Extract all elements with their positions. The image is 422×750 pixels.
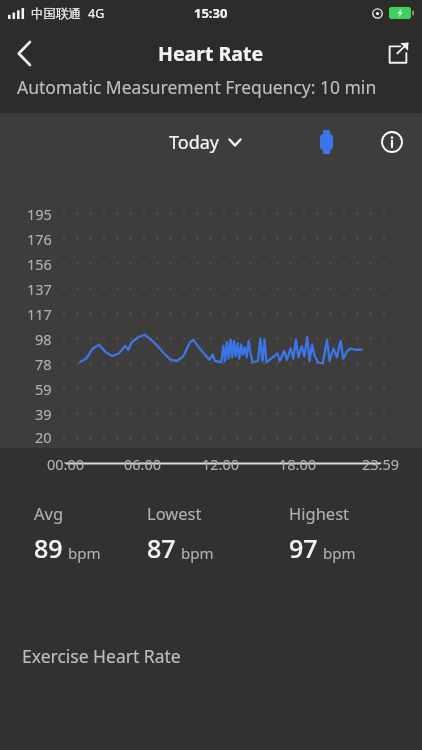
staticText: bpm: [68, 543, 101, 563]
staticText: 4G: [88, 5, 105, 22]
button[interactable]: Exercise Heart Rate: [0, 629, 422, 683]
staticText: Exercise Heart Rate: [22, 644, 181, 668]
staticText: bpm: [181, 543, 214, 563]
staticText: 98: [35, 329, 52, 349]
staticText: 97: [289, 531, 318, 565]
staticText: 176: [27, 229, 52, 249]
staticText: 89: [34, 531, 63, 565]
staticText: bpm: [323, 543, 356, 563]
staticText: 195: [27, 204, 52, 224]
staticText: 00:00: [47, 454, 85, 474]
staticText: 18:00: [279, 454, 317, 474]
staticText: Lowest: [147, 502, 202, 524]
button[interactable]: Share: [374, 30, 422, 76]
staticText: 156: [27, 254, 52, 274]
staticText: 137: [27, 279, 52, 299]
staticText: 中国联通: [31, 6, 81, 22]
button[interactable]: Information: [370, 120, 414, 164]
staticText: Highest: [289, 502, 349, 524]
staticText: 78: [35, 354, 52, 374]
button[interactable]: Today: [169, 130, 242, 155]
button[interactable]: Back: [0, 30, 48, 76]
staticText: 59: [35, 379, 52, 399]
staticText: 39: [35, 404, 52, 424]
staticText: Heart Rate: [158, 40, 264, 67]
staticText: 15:30: [194, 4, 228, 22]
staticText: 06:00: [124, 454, 162, 474]
staticText: 20: [35, 427, 52, 447]
staticText: Today: [169, 130, 219, 155]
staticText: 12:00: [202, 454, 240, 474]
staticText: 23:59: [362, 454, 400, 474]
staticText: Avg: [34, 502, 64, 524]
staticText: 87: [147, 531, 176, 565]
staticText: 117: [27, 304, 52, 324]
button[interactable]: Device: [306, 122, 346, 162]
staticText: Automatic Measurement Frequency: 10 min: [17, 75, 377, 99]
